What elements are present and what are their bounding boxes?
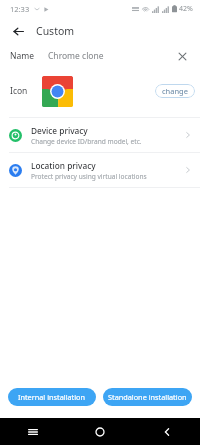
button[interactable]: Device privacy — [0, 118, 200, 152]
staticText: Name — [10, 50, 34, 62]
staticText: Protect privacy using virtual locations — [31, 172, 147, 181]
button[interactable]: Home — [66, 418, 133, 445]
button[interactable]: Clear — [174, 48, 190, 64]
button[interactable]: Name — [0, 44, 200, 68]
button[interactable]: Recent apps — [0, 418, 66, 445]
button[interactable]: change — [155, 84, 195, 98]
staticText: Change device ID/brand model, etc. — [31, 137, 142, 146]
staticText: Internal installation — [18, 392, 86, 402]
button[interactable]: App icon — [42, 76, 73, 107]
button[interactable]: Location privacy — [0, 153, 200, 187]
staticText: Chrome clone — [48, 50, 104, 62]
staticText: Standalone installation — [108, 392, 187, 402]
staticText: Device privacy — [31, 125, 88, 136]
button[interactable]: Internal installation — [8, 388, 96, 406]
staticText: Custom — [36, 24, 75, 38]
staticText: Location privacy — [31, 160, 96, 171]
button[interactable]: Back — [8, 21, 28, 41]
button[interactable]: Standalone installation — [103, 388, 192, 406]
button[interactable]: Back — [133, 418, 200, 445]
staticText: change — [162, 86, 188, 96]
staticText: 12:33 — [10, 4, 30, 14]
staticText: Icon — [10, 85, 28, 97]
staticText: 42% — [179, 4, 193, 14]
